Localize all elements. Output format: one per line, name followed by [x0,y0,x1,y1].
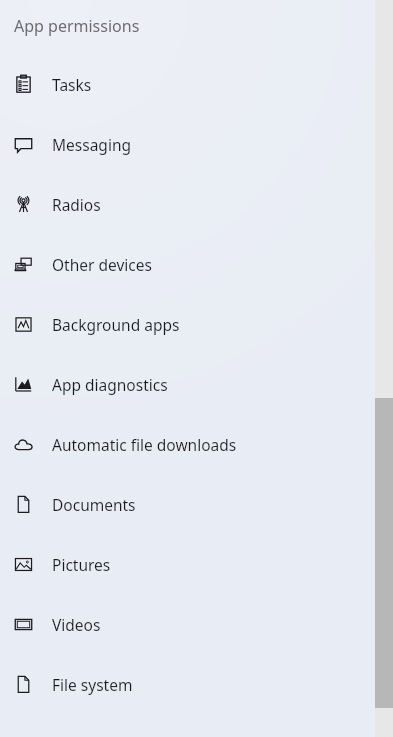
staticText: Radios [52,194,101,215]
staticText: Documents [52,494,136,515]
button[interactable]: Messaging [0,114,393,174]
button[interactable]: File system [0,654,393,714]
button[interactable]: Automatic file downloads [0,414,393,474]
button[interactable]: Background apps [0,294,393,354]
staticText: Background apps [52,314,180,335]
staticText: Other devices [52,254,152,275]
staticText: Videos [52,614,101,635]
button[interactable]: Videos [0,594,393,654]
button[interactable]: Pictures [0,534,393,594]
button[interactable]: Radios [0,174,393,234]
button[interactable]: App diagnostics [0,354,393,414]
button[interactable]: Documents [0,474,393,534]
staticText: Messaging [52,134,131,155]
staticText: File system [52,674,133,695]
staticText: Automatic file downloads [52,434,237,455]
button[interactable]: Other devices [0,234,393,294]
staticText: Pictures [52,554,111,575]
staticText: Tasks [52,74,92,95]
staticText: App permissions [14,15,140,37]
staticText: App diagnostics [52,374,168,395]
button[interactable]: Tasks [0,54,393,114]
